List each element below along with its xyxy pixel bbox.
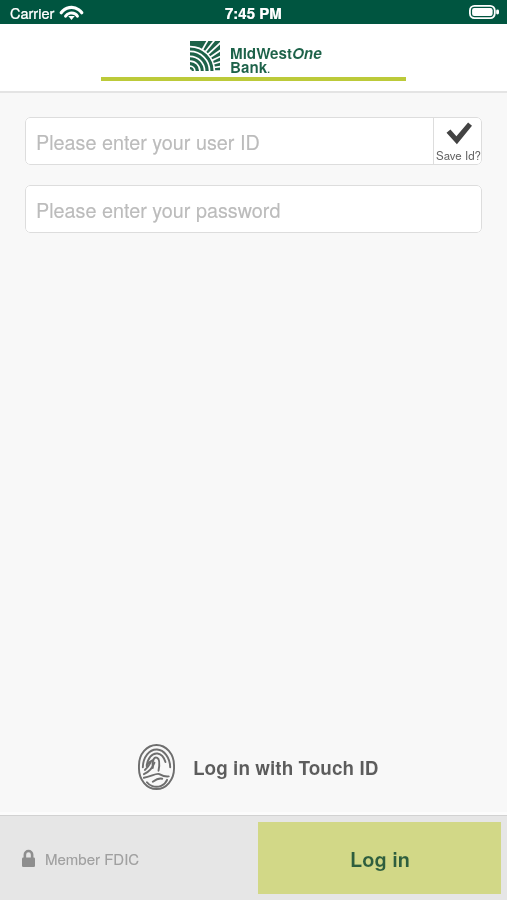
staticText: Member FDIC bbox=[45, 848, 140, 869]
button[interactable]: Save Id bbox=[434, 117, 482, 165]
staticText: Please enter your user ID bbox=[36, 127, 260, 155]
staticText: Save Id? bbox=[436, 147, 481, 163]
button[interactable]: Log in bbox=[258, 822, 501, 894]
staticText: Carrier bbox=[10, 2, 55, 23]
button[interactable]: Please enter your password bbox=[25, 185, 482, 233]
staticText: MidWestOne bbox=[230, 42, 322, 64]
staticText: Please enter your password bbox=[36, 195, 281, 223]
button[interactable]: Log in with Touch ID bbox=[5, 744, 507, 790]
button[interactable]: Please enter your user ID bbox=[25, 117, 433, 165]
staticText: Bank. bbox=[230, 56, 270, 78]
staticText: 7:45 PM bbox=[225, 2, 282, 23]
staticText: Log in with Touch ID bbox=[193, 754, 379, 781]
staticText: Log in bbox=[350, 844, 410, 873]
